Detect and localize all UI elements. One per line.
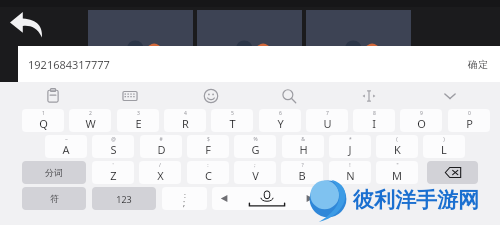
button[interactable]: : xyxy=(162,187,207,210)
staticText: ! xyxy=(349,162,351,169)
button[interactable]: 123 xyxy=(92,187,156,210)
staticText: F xyxy=(205,142,211,157)
staticText: 分词 xyxy=(45,167,63,178)
staticText: E xyxy=(135,116,142,131)
staticText: 4 xyxy=(184,110,187,117)
button[interactable]: % xyxy=(234,135,276,158)
button[interactable]: & xyxy=(282,135,324,158)
staticText: Q xyxy=(39,116,48,131)
button[interactable]: ( xyxy=(376,135,418,158)
staticText: : xyxy=(184,191,186,201)
staticText: % xyxy=(253,136,258,143)
button[interactable]: Space, voice input xyxy=(212,187,322,210)
staticText: G xyxy=(251,142,260,157)
staticText: ' xyxy=(112,162,114,169)
button[interactable]: ~ xyxy=(45,135,87,158)
button[interactable]: 6 xyxy=(259,109,301,132)
button[interactable] xyxy=(88,10,193,48)
staticText: $ xyxy=(207,136,210,143)
staticText: ( xyxy=(396,136,398,143)
staticText: " xyxy=(396,162,399,169)
button[interactable]: ' xyxy=(92,161,134,184)
button[interactable]: Back xyxy=(6,4,46,44)
button[interactable]: ! xyxy=(329,161,371,184)
staticText: P xyxy=(466,116,473,131)
staticText: 8 xyxy=(373,110,376,117)
button[interactable]: 2 xyxy=(69,109,111,132)
button[interactable]: 确定 xyxy=(464,54,492,75)
staticText: ; xyxy=(183,197,186,208)
staticText: Y xyxy=(277,116,284,131)
button[interactable]: ) xyxy=(423,135,465,158)
button[interactable]: : xyxy=(187,161,229,184)
button[interactable]: @ xyxy=(92,135,134,158)
staticText: : xyxy=(207,162,209,169)
staticText: 0 xyxy=(468,110,471,117)
button[interactable]: Backspace xyxy=(427,161,478,184)
staticText: 7 xyxy=(326,110,329,117)
button[interactable] xyxy=(306,10,411,48)
staticText: J xyxy=(348,142,352,157)
staticText: / xyxy=(159,162,161,169)
staticText: ; xyxy=(254,162,256,169)
button[interactable] xyxy=(197,10,302,48)
button[interactable]: Keyboard layout xyxy=(116,84,144,108)
button[interactable]: Hide keyboard xyxy=(436,84,464,108)
button[interactable]: 分词 xyxy=(22,161,86,184)
staticText: ) xyxy=(443,136,445,143)
staticText: ~ xyxy=(65,136,68,143)
button[interactable]: # xyxy=(140,135,182,158)
button[interactable]: 9 xyxy=(400,109,442,132)
staticText: 2 xyxy=(89,110,92,117)
staticText: K xyxy=(394,142,401,157)
button[interactable]: ; xyxy=(234,161,276,184)
button[interactable]: 3 xyxy=(117,109,159,132)
button[interactable]: Emoji xyxy=(197,84,225,108)
button[interactable]: ? xyxy=(281,161,323,184)
staticText: ? xyxy=(301,162,304,169)
staticText: X xyxy=(157,168,164,183)
button[interactable]: 1 xyxy=(22,109,64,132)
staticText: I xyxy=(372,116,376,131)
staticText: S xyxy=(110,142,117,157)
staticText: 123 xyxy=(116,193,132,205)
staticText: T xyxy=(229,116,236,131)
staticText: U xyxy=(323,116,332,131)
staticText: N xyxy=(346,168,355,183)
staticText: 3 xyxy=(137,110,140,117)
staticText: 彼利洋手游网 xyxy=(353,187,479,213)
staticText: W xyxy=(85,116,96,131)
button[interactable]: 5 xyxy=(211,109,253,132)
staticText: H xyxy=(299,142,308,157)
staticText: C xyxy=(205,168,212,183)
staticText: 5 xyxy=(231,110,234,117)
staticText: L xyxy=(441,142,447,157)
button[interactable]: Search xyxy=(275,84,303,108)
staticText: D xyxy=(157,142,166,157)
button[interactable]: 0 xyxy=(448,109,490,132)
button[interactable]: * xyxy=(329,135,371,158)
staticText: & xyxy=(301,136,305,143)
staticText: O xyxy=(417,116,426,131)
staticText: M xyxy=(392,168,402,183)
staticText: # xyxy=(159,136,163,143)
button[interactable]: 7 xyxy=(306,109,348,132)
staticText: 符 xyxy=(50,193,59,204)
staticText: 9 xyxy=(420,110,423,117)
staticText: V xyxy=(252,168,259,183)
button[interactable]: 符 xyxy=(22,187,86,210)
button[interactable]: 4 xyxy=(164,109,206,132)
staticText: Z xyxy=(110,168,117,183)
button[interactable]: / xyxy=(139,161,181,184)
staticText: 1921684317777 xyxy=(28,57,110,72)
button[interactable]: 8 xyxy=(353,109,395,132)
staticText: * xyxy=(349,136,352,143)
button[interactable]: Clipboard xyxy=(39,84,67,108)
button[interactable]: $ xyxy=(187,135,229,158)
staticText: 6 xyxy=(279,110,282,117)
button[interactable]: Move cursor xyxy=(355,84,383,108)
staticText: 1 xyxy=(42,110,45,117)
staticText: B xyxy=(298,168,306,183)
button[interactable]: " xyxy=(376,161,418,184)
staticText: R xyxy=(182,116,189,131)
